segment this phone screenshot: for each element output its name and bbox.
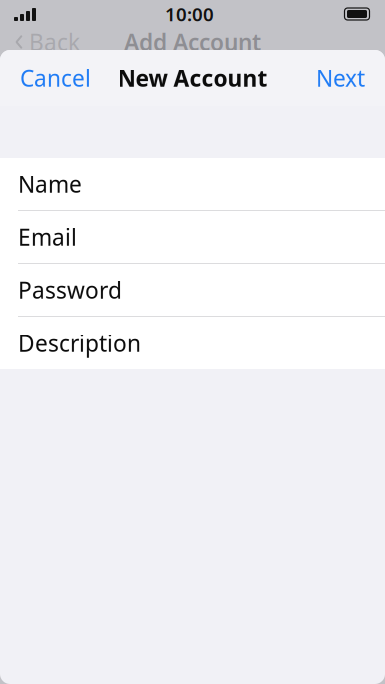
button[interactable]: Email (0, 211, 385, 263)
staticText: Password (18, 275, 122, 305)
staticText: Cancel (20, 63, 91, 93)
button[interactable]: Next (296, 51, 385, 105)
button[interactable]: Cancel (0, 51, 111, 105)
staticText: New Account (117, 63, 267, 93)
staticText: Name (18, 169, 82, 199)
staticText: Add Account (124, 27, 261, 57)
staticText: Email (18, 222, 77, 252)
button[interactable]: Description (0, 317, 385, 369)
staticText: Back (29, 27, 80, 57)
staticText: Description (18, 328, 141, 358)
button[interactable]: Name (0, 158, 385, 210)
staticText: Next (316, 63, 365, 93)
button[interactable]: Password (0, 264, 385, 316)
staticText: 10:00 (165, 2, 214, 26)
